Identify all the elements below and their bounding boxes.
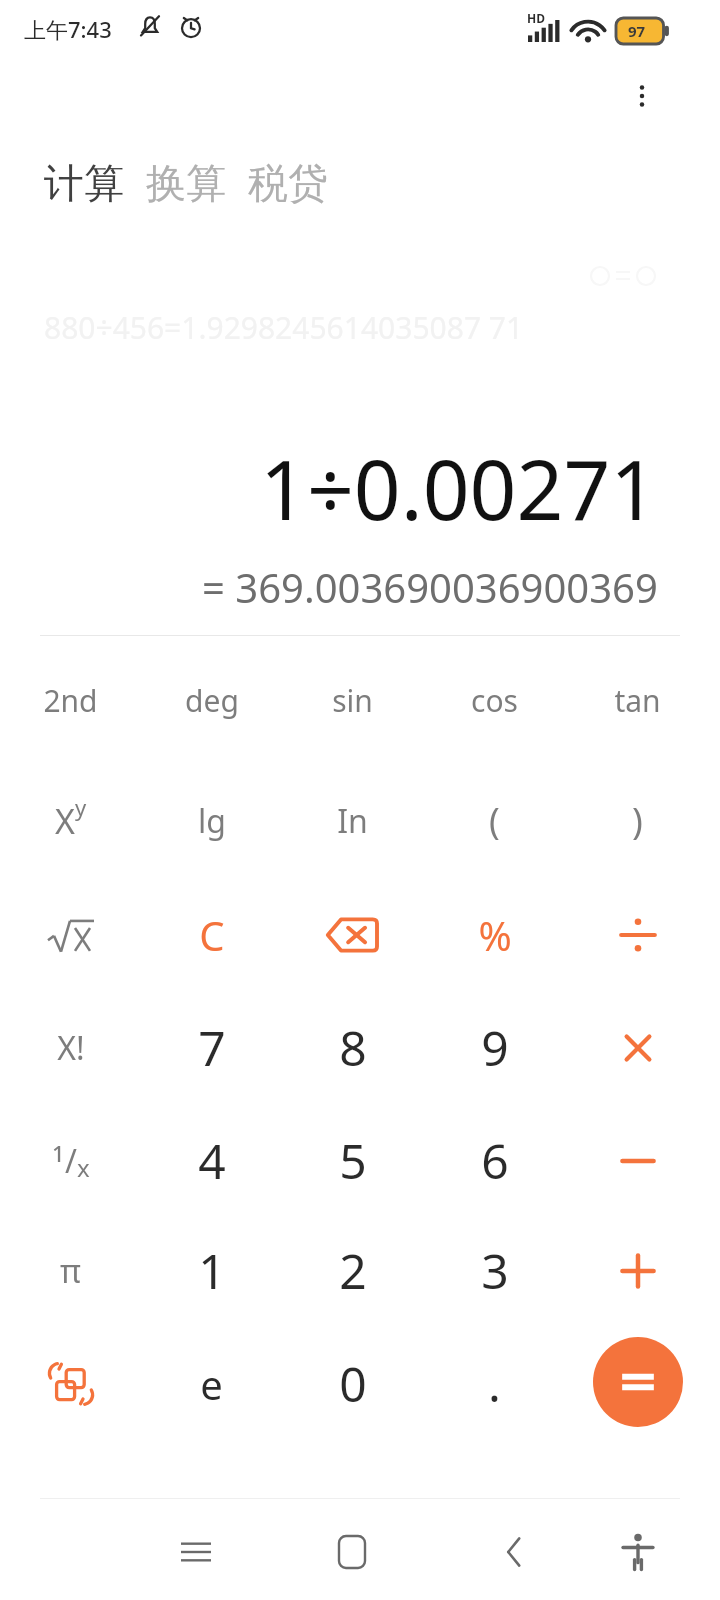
staticText: 1÷0.00271 — [260, 432, 658, 544]
button[interactable]: Plus — [567, 1214, 708, 1327]
button[interactable]: More options — [608, 62, 676, 130]
button[interactable]: e — [141, 1327, 282, 1440]
button[interactable]: Home — [307, 1507, 397, 1597]
staticText: y — [75, 792, 87, 822]
staticText: = 369.003690036900369 — [202, 560, 658, 614]
button[interactable]: 5 — [282, 1104, 423, 1217]
button[interactable]: Minus — [567, 1104, 708, 1217]
staticText: 换算 — [146, 158, 226, 208]
staticText: / — [65, 1139, 77, 1183]
button[interactable]: 1 — [0, 1104, 141, 1217]
button[interactable]: cos — [424, 644, 565, 757]
staticText: 上午7:43 — [24, 14, 112, 44]
staticText: ( — [489, 796, 500, 845]
staticText: lg — [198, 799, 226, 843]
staticText: tan — [614, 680, 661, 721]
button[interactable]: lg — [141, 764, 282, 877]
button[interactable]: X! — [0, 991, 141, 1104]
staticText: 97 — [628, 21, 646, 41]
button[interactable]: 2nd — [0, 644, 141, 757]
staticText: 税贷 — [248, 158, 328, 208]
staticText: π — [60, 1249, 81, 1293]
button[interactable]: ) — [567, 764, 708, 877]
button[interactable]: Accessibility — [593, 1507, 683, 1597]
button[interactable]: 税贷 — [248, 158, 328, 208]
button[interactable]: sin — [282, 644, 423, 757]
staticText: cos — [471, 680, 518, 721]
button[interactable]: 2 — [282, 1214, 423, 1327]
button[interactable]: π — [0, 1214, 141, 1327]
button[interactable]: Recent apps — [151, 1507, 241, 1597]
button[interactable]: 9 — [424, 991, 565, 1104]
staticText: X — [55, 798, 75, 844]
button[interactable] — [0, 878, 141, 991]
button[interactable]: In — [282, 764, 423, 877]
button[interactable]: Back — [469, 1507, 559, 1597]
staticText: 9 — [481, 1015, 509, 1080]
staticText: e — [200, 1357, 223, 1411]
button[interactable]: % — [424, 878, 565, 991]
staticText: 4 — [198, 1128, 226, 1193]
button[interactable]: 换算 — [146, 158, 226, 208]
button[interactable]: 0 — [282, 1327, 423, 1440]
button[interactable]: 3 — [424, 1214, 565, 1327]
staticText: 7 — [198, 1015, 226, 1080]
staticText: ) — [632, 796, 643, 845]
staticText: x — [77, 1151, 90, 1184]
staticText: 1 — [52, 1138, 65, 1168]
staticText: 8 — [339, 1015, 367, 1080]
staticText: sin — [332, 680, 373, 721]
button[interactable]: Backspace — [282, 878, 423, 991]
button[interactable]: Divide — [567, 878, 708, 991]
staticText: C — [199, 908, 225, 962]
staticText: HD — [527, 10, 545, 26]
staticText: X! — [57, 1026, 85, 1070]
button[interactable]: . — [424, 1327, 565, 1440]
button[interactable]: ( — [424, 764, 565, 877]
staticText: 5 — [339, 1128, 367, 1193]
button[interactable]: 880÷456=1.9298245614035087 71 — [44, 307, 524, 348]
button[interactable]: C — [141, 878, 282, 991]
staticText: 计算 — [44, 158, 124, 208]
button[interactable]: 4 — [141, 1104, 282, 1217]
button[interactable]: 1 — [141, 1214, 282, 1327]
staticText: 2 — [339, 1238, 367, 1303]
button[interactable]: Convert units — [0, 1327, 141, 1440]
button[interactable]: Equals — [593, 1337, 683, 1427]
staticText: . — [488, 1351, 501, 1416]
staticText: % — [478, 908, 512, 962]
staticText: 3 — [481, 1238, 509, 1303]
button[interactable]: 8 — [282, 991, 423, 1104]
button[interactable]: tan — [567, 644, 708, 757]
button[interactable]: deg — [141, 644, 282, 757]
button[interactable]: 6 — [424, 1104, 565, 1217]
button[interactable]: 7 — [141, 991, 282, 1104]
button[interactable]: X — [0, 764, 141, 877]
staticText: 0 — [339, 1351, 367, 1416]
staticText: deg — [185, 680, 239, 721]
staticText: 6 — [481, 1128, 509, 1193]
staticText: In — [337, 799, 368, 843]
staticText: 2nd — [43, 680, 98, 721]
button[interactable]: 计算 — [44, 158, 124, 208]
staticText: 1 — [198, 1238, 226, 1303]
button[interactable]: Multiply — [567, 991, 708, 1104]
